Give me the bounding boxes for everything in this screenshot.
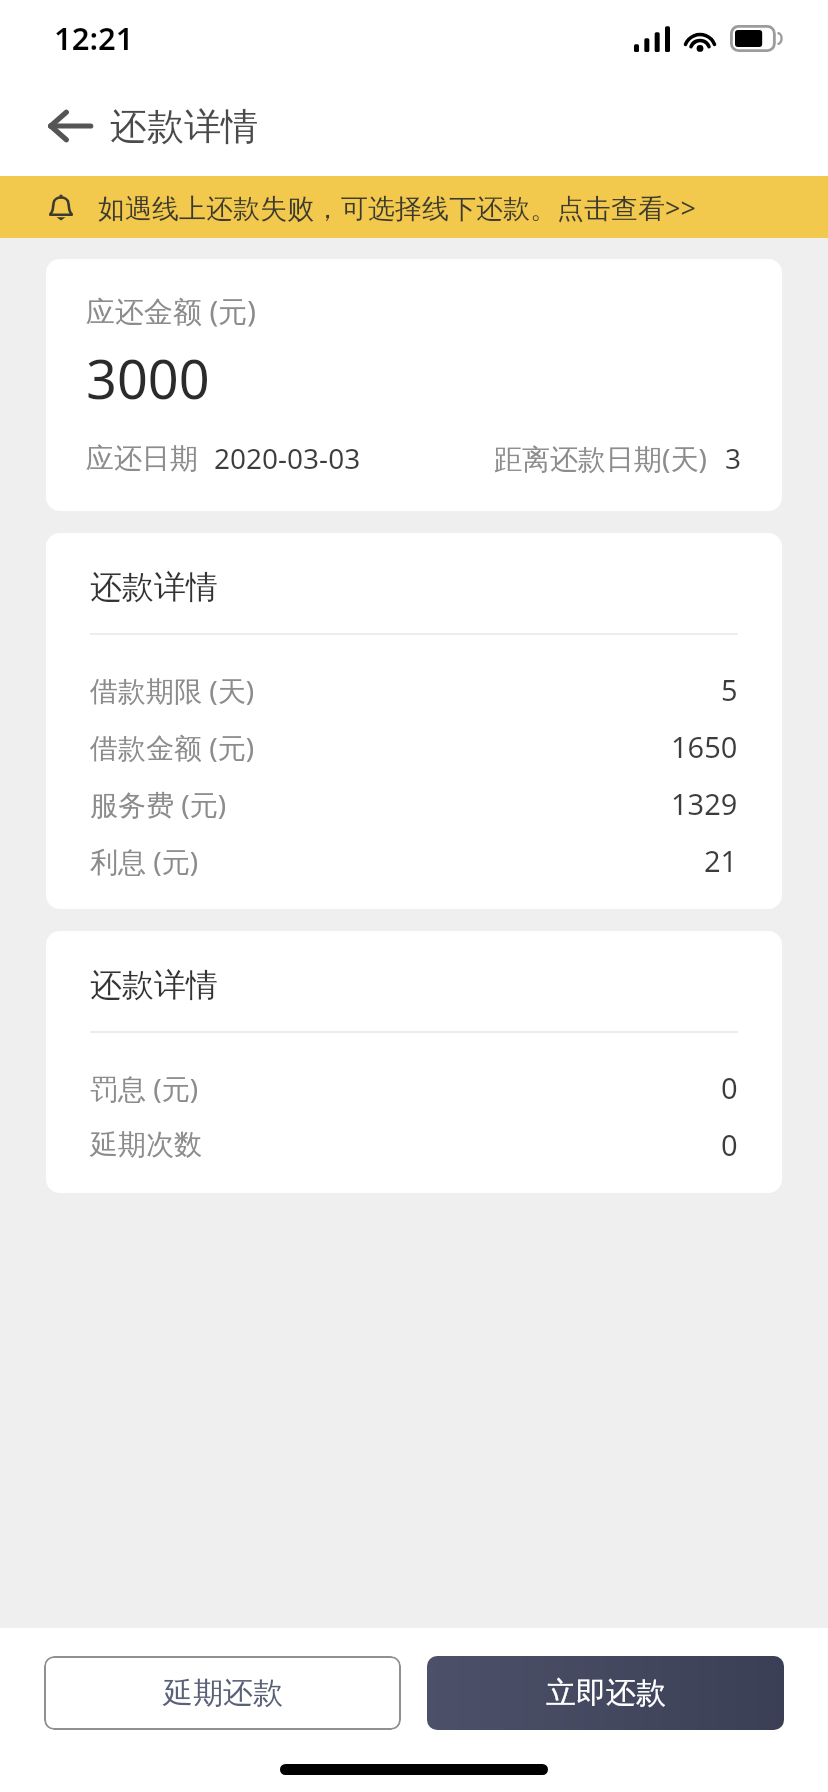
- staticText: 2020-03-03: [214, 439, 361, 477]
- staticText: 21: [704, 841, 738, 880]
- staticText: 如遇线上还款失败，可选择线下还款。点击查看>>: [98, 189, 696, 226]
- staticText: 0: [721, 1125, 738, 1164]
- button[interactable]: 应还金额 (元): [46, 259, 782, 511]
- staticText: 延期次数: [90, 1127, 202, 1162]
- staticText: 5: [721, 670, 738, 709]
- staticText: 1650: [671, 727, 738, 766]
- staticText: 3: [725, 439, 742, 477]
- staticText: 应还金额 (元): [86, 291, 256, 331]
- staticText: 0: [721, 1068, 738, 1107]
- button[interactable]: 还款详情: [46, 931, 782, 1193]
- staticText: 服务费 (元): [90, 785, 227, 823]
- button[interactable]: 如遇线上还款失败，可选择线下还款。点击查看>>: [0, 176, 828, 238]
- staticText: 借款金额 (元): [90, 728, 255, 766]
- staticText: 12:21: [54, 17, 134, 59]
- button[interactable]: 延期还款: [44, 1656, 401, 1730]
- staticText: 立即还款: [546, 1674, 666, 1712]
- staticText: 借款期限 (天): [90, 671, 255, 709]
- staticText: 延期还款: [163, 1674, 283, 1712]
- other: Back: [44, 100, 96, 152]
- staticText: 1329: [671, 784, 738, 823]
- button[interactable]: 还款详情: [46, 533, 782, 909]
- button[interactable]: 立即还款: [427, 1656, 784, 1730]
- staticText: 罚息 (元): [90, 1069, 199, 1107]
- button[interactable]: Back: [44, 100, 272, 152]
- staticText: 利息 (元): [90, 842, 199, 880]
- staticText: 还款详情: [110, 103, 258, 150]
- staticText: 还款详情: [90, 567, 218, 607]
- staticText: 距离还款日期(天): [494, 439, 707, 477]
- staticText: 还款详情: [90, 965, 218, 1005]
- staticText: 应还日期: [86, 441, 198, 476]
- staticText: 3000: [86, 341, 210, 415]
